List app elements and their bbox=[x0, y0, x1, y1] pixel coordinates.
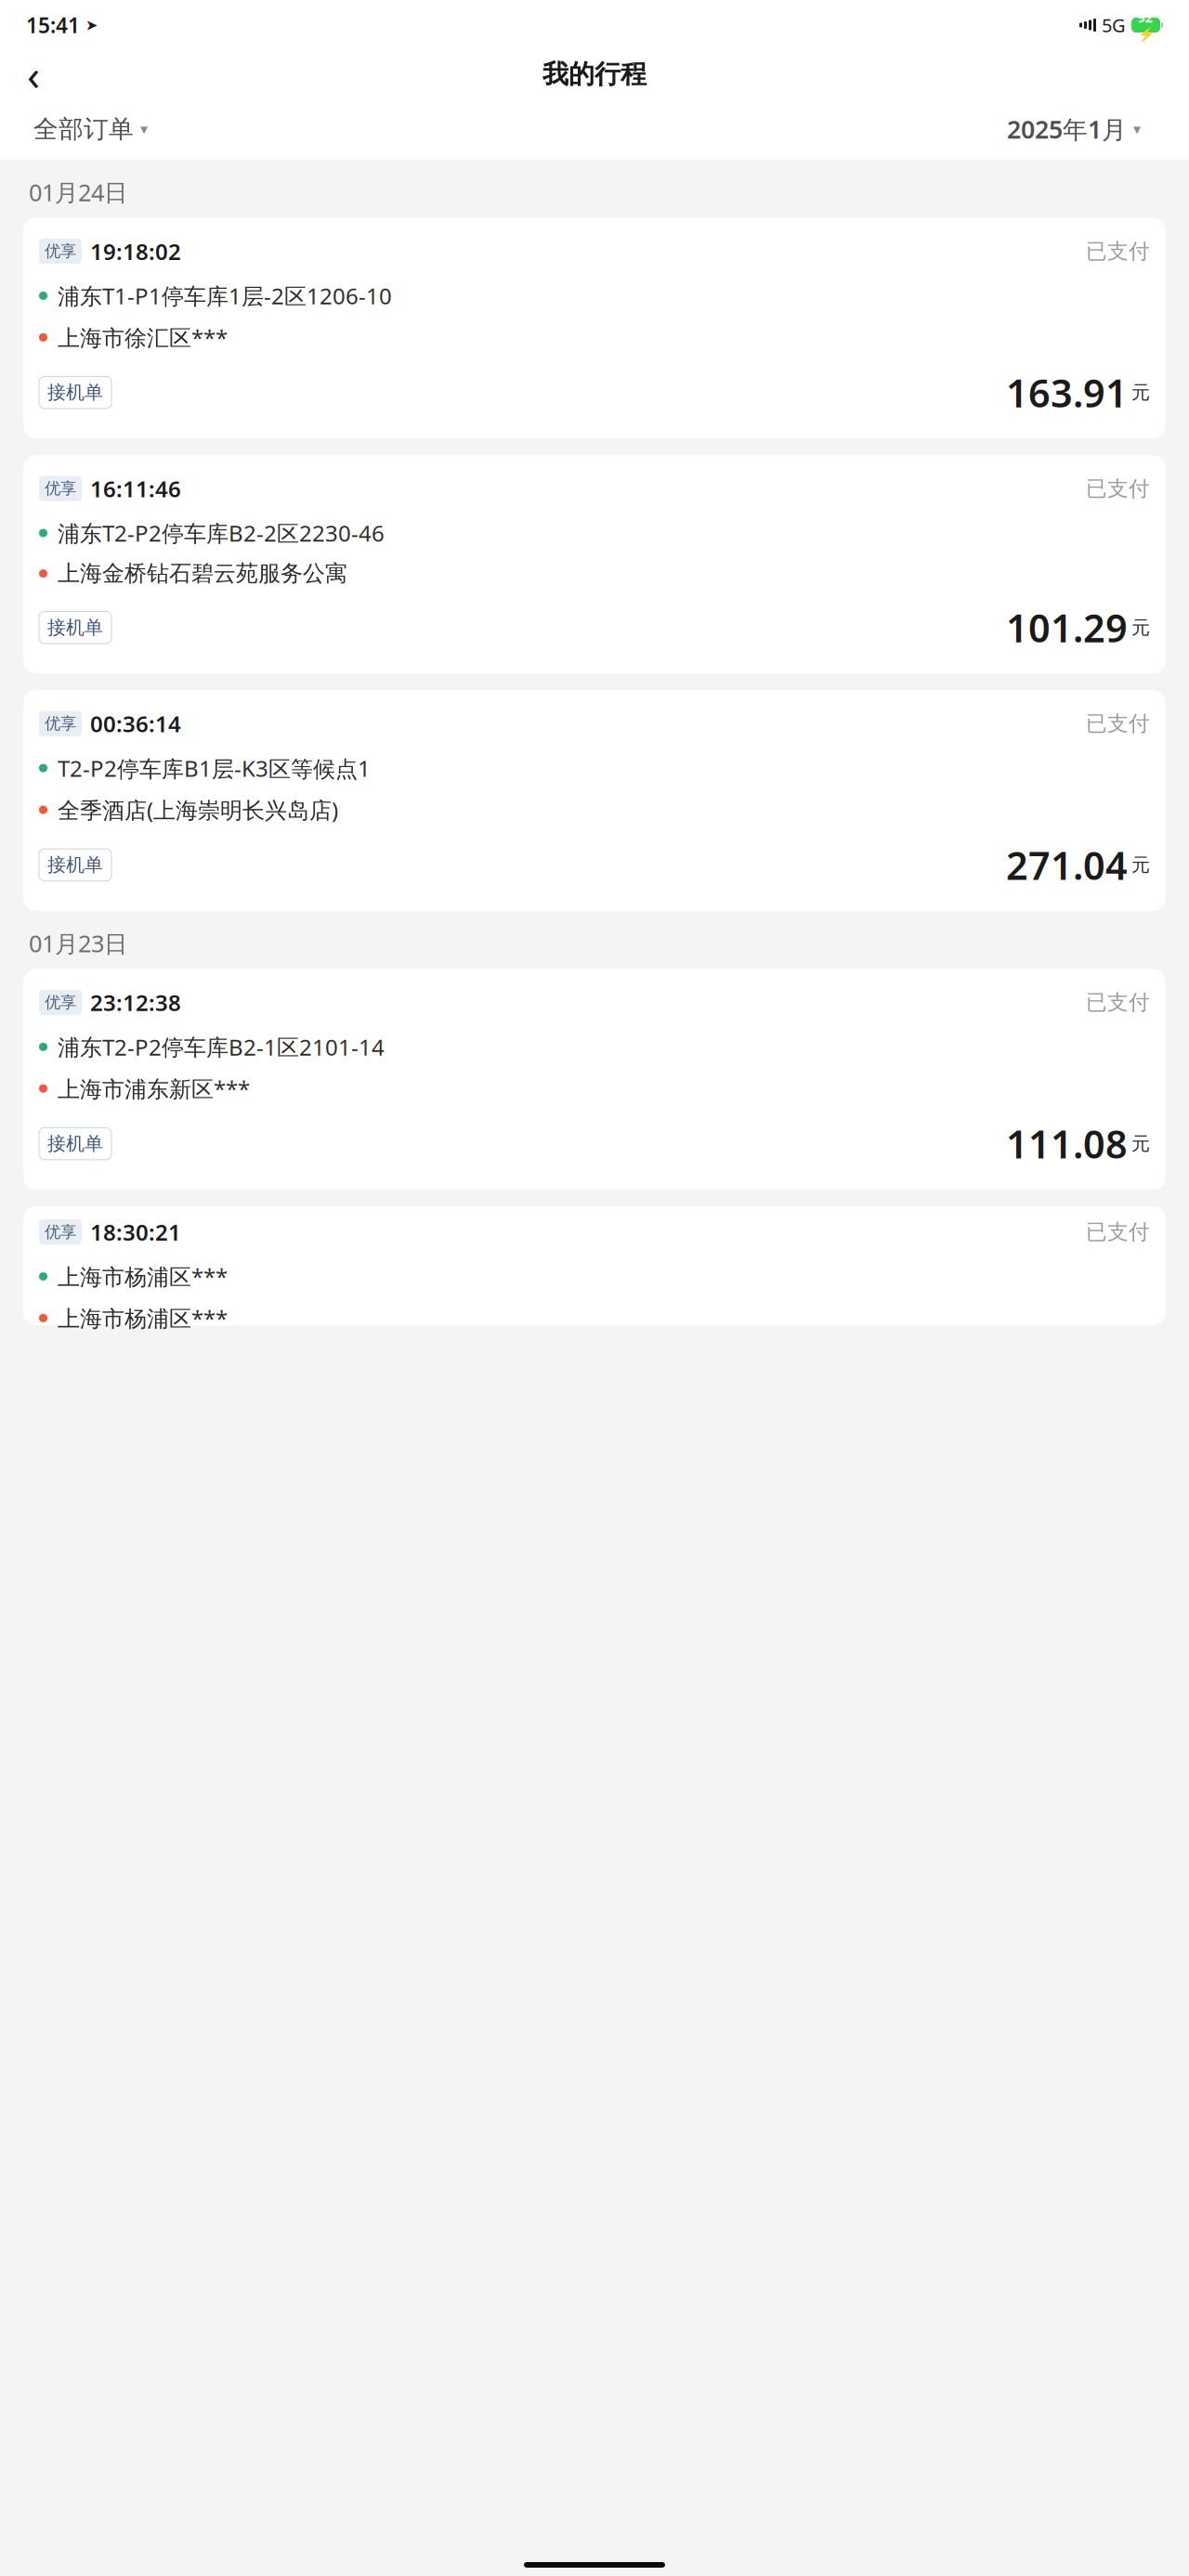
staticText: 271.04 bbox=[1006, 839, 1128, 890]
staticText: 接机单 bbox=[47, 854, 103, 876]
button[interactable]: 返回 bbox=[13, 54, 54, 95]
staticText: 优享 bbox=[45, 714, 76, 733]
staticText: 18:30:21 bbox=[90, 1217, 181, 1247]
staticText: 元 bbox=[1131, 1132, 1150, 1155]
staticText: 上海市杨浦区*** bbox=[58, 1303, 228, 1333]
staticText: 15:41 bbox=[26, 11, 80, 39]
staticText: ▾ bbox=[1133, 121, 1141, 138]
staticText: 元 bbox=[1131, 381, 1150, 404]
button[interactable]: 优享 bbox=[23, 218, 1166, 438]
staticText: 我的行程 bbox=[542, 58, 647, 90]
staticText: 5G bbox=[1102, 13, 1126, 37]
staticText: 优享 bbox=[45, 993, 76, 1012]
staticText: 23:12:38 bbox=[90, 988, 181, 1017]
staticText: 01月23日 bbox=[29, 928, 127, 959]
staticText: 已支付 bbox=[1086, 1219, 1150, 1245]
staticText: 上海金桥钻石碧云苑服务公寓 bbox=[58, 560, 347, 587]
staticText: ▾ bbox=[140, 121, 148, 138]
staticText: 92⚡ bbox=[1137, 8, 1154, 42]
staticText: 接机单 bbox=[47, 616, 103, 639]
staticText: 元 bbox=[1131, 854, 1150, 876]
button[interactable]: 全部订单 bbox=[33, 108, 148, 150]
staticText: ‹ bbox=[27, 46, 40, 102]
staticText: 已支付 bbox=[1086, 989, 1150, 1015]
staticText: 上海市浦东新区*** bbox=[58, 1074, 250, 1103]
staticText: 元 bbox=[1131, 616, 1150, 639]
staticText: 已支付 bbox=[1086, 238, 1150, 264]
staticText: 优享 bbox=[45, 479, 76, 498]
staticText: 101.29 bbox=[1006, 602, 1128, 653]
staticText: 接机单 bbox=[47, 381, 103, 404]
staticText: 已支付 bbox=[1086, 476, 1150, 501]
button[interactable]: 优享 bbox=[23, 455, 1166, 673]
staticText: 163.91 bbox=[1006, 367, 1128, 418]
staticText: 浦东T2-P2停车库B2-1区2101-14 bbox=[58, 1032, 385, 1062]
button[interactable]: 2025年1月 bbox=[1007, 107, 1141, 151]
button[interactable]: 优享 bbox=[23, 969, 1166, 1190]
staticText: 接机单 bbox=[47, 1132, 103, 1155]
staticText: 上海市徐汇区*** bbox=[58, 323, 228, 352]
staticText: 01月24日 bbox=[29, 176, 127, 208]
staticText: 已支付 bbox=[1086, 711, 1150, 736]
button[interactable]: 优享 bbox=[23, 690, 1166, 911]
staticText: 2025年1月 bbox=[1007, 113, 1127, 146]
staticText: 浦东T2-P2停车库B2-2区2230-46 bbox=[58, 518, 385, 548]
staticText: T2-P2停车库B1层-K3区等候点1 bbox=[58, 753, 371, 783]
staticText: 优享 bbox=[45, 1222, 76, 1242]
staticText: 全季酒店(上海崇明长兴岛店) bbox=[58, 795, 338, 825]
staticText: 上海市杨浦区*** bbox=[58, 1262, 228, 1291]
staticText: 16:11:46 bbox=[90, 474, 181, 503]
staticText: 111.08 bbox=[1006, 1118, 1128, 1169]
staticText: 00:36:14 bbox=[90, 709, 181, 738]
staticText: ➤ bbox=[85, 17, 98, 34]
staticText: 全部订单 bbox=[33, 114, 134, 144]
staticText: 优享 bbox=[45, 241, 76, 261]
staticText: 浦东T1-P1停车库1层-2区1206-10 bbox=[58, 281, 392, 311]
staticText: 19:18:02 bbox=[90, 236, 181, 266]
